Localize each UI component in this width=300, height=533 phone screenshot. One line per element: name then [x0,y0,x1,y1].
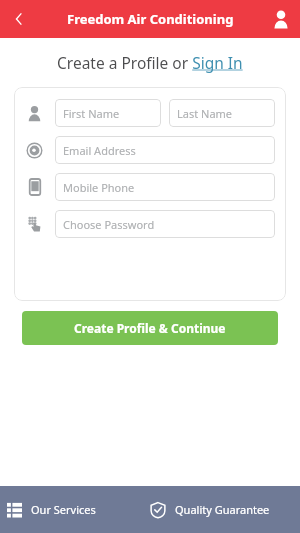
staticText: Create Profile & Continue [74,320,226,336]
button[interactable]: First Name [55,99,161,127]
staticText: Freedom Air Conditioning [67,10,234,28]
staticText: Mobile Phone [63,180,135,195]
staticText: Create a Profile or Sign In [57,52,243,73]
button[interactable]: Back [0,0,38,38]
button[interactable]: Create Profile & Continue [22,311,278,345]
button[interactable]: Account [262,0,300,38]
staticText: First Name [63,106,120,121]
button[interactable]: Last Name [169,99,275,127]
staticText: Our Services [31,502,96,517]
button[interactable]: Email Address [55,136,275,164]
staticText: Email Address [63,143,136,158]
button[interactable]: Mobile Phone [55,173,275,201]
button[interactable]: Quality Guarantee [150,486,300,533]
staticText: Choose Password [63,217,155,232]
staticText: Quality Guarantee [175,502,270,517]
button[interactable]: Choose Password [55,210,275,238]
staticText: Last Name [177,106,233,121]
button[interactable]: Our Services [0,486,150,533]
